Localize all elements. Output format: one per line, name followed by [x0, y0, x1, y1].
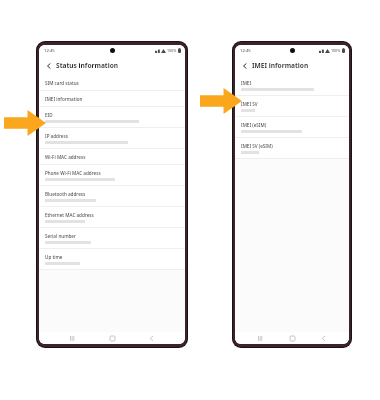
staticText: Wi-Fi MAC address — [45, 154, 86, 160]
staticText: IMEI (eSIM) — [241, 122, 267, 128]
staticText: 12:45 — [44, 48, 55, 54]
button[interactable]: Back — [318, 333, 329, 344]
button[interactable]: Home — [287, 333, 298, 344]
button[interactable]: SIM card status — [39, 75, 185, 90]
button[interactable]: IMEI (eSIM) — [235, 117, 349, 137]
button[interactable]: IP address — [39, 128, 185, 148]
staticText: IMEI information — [252, 61, 309, 70]
button[interactable]: Wi-Fi MAC address — [39, 149, 185, 164]
button[interactable]: Bluetooth address — [39, 186, 185, 206]
staticText: 100% — [167, 48, 177, 53]
staticText: Up time — [45, 254, 63, 260]
button[interactable]: Back — [44, 61, 53, 70]
staticText: Bluetooth address — [45, 191, 86, 197]
button[interactable]: IMEI — [235, 75, 349, 95]
button[interactable]: IMEI information — [39, 91, 185, 106]
button[interactable]: EID — [39, 107, 185, 127]
button[interactable]: Back — [146, 333, 157, 344]
button[interactable]: Back — [240, 61, 249, 70]
button[interactable]: Points to IMEI screen — [200, 88, 242, 114]
staticText: EID — [45, 112, 53, 118]
button[interactable]: Recents — [67, 333, 78, 344]
button[interactable]: Points to IMEI information row — [4, 110, 46, 136]
button[interactable]: Home — [107, 333, 118, 344]
button[interactable]: Recents — [255, 333, 266, 344]
staticText: 100% — [331, 48, 341, 53]
button[interactable]: Phone Wi-Fi MAC address — [39, 165, 185, 185]
staticText: IP address — [45, 133, 68, 139]
button[interactable]: Up time — [39, 249, 185, 269]
button[interactable]: Serial number — [39, 228, 185, 248]
button[interactable]: Back — [39, 56, 185, 75]
staticText: Status information — [56, 61, 119, 70]
staticText: IMEI SV (eSIM) — [241, 143, 273, 149]
button[interactable]: IMEI SV (eSIM) — [235, 138, 349, 158]
staticText: IMEI SV — [241, 101, 258, 107]
staticText: 12:45 — [240, 48, 251, 54]
staticText: SIM card status — [45, 80, 79, 86]
button[interactable]: Back — [235, 56, 349, 75]
staticText: Phone Wi-Fi MAC address — [45, 170, 101, 176]
staticText: IMEI — [241, 80, 252, 86]
staticText: Serial number — [45, 233, 76, 239]
staticText: Ethernet MAC address — [45, 212, 94, 218]
button[interactable]: Ethernet MAC address — [39, 207, 185, 227]
staticText: IMEI information — [45, 96, 83, 102]
button[interactable]: IMEI SV — [235, 96, 349, 116]
